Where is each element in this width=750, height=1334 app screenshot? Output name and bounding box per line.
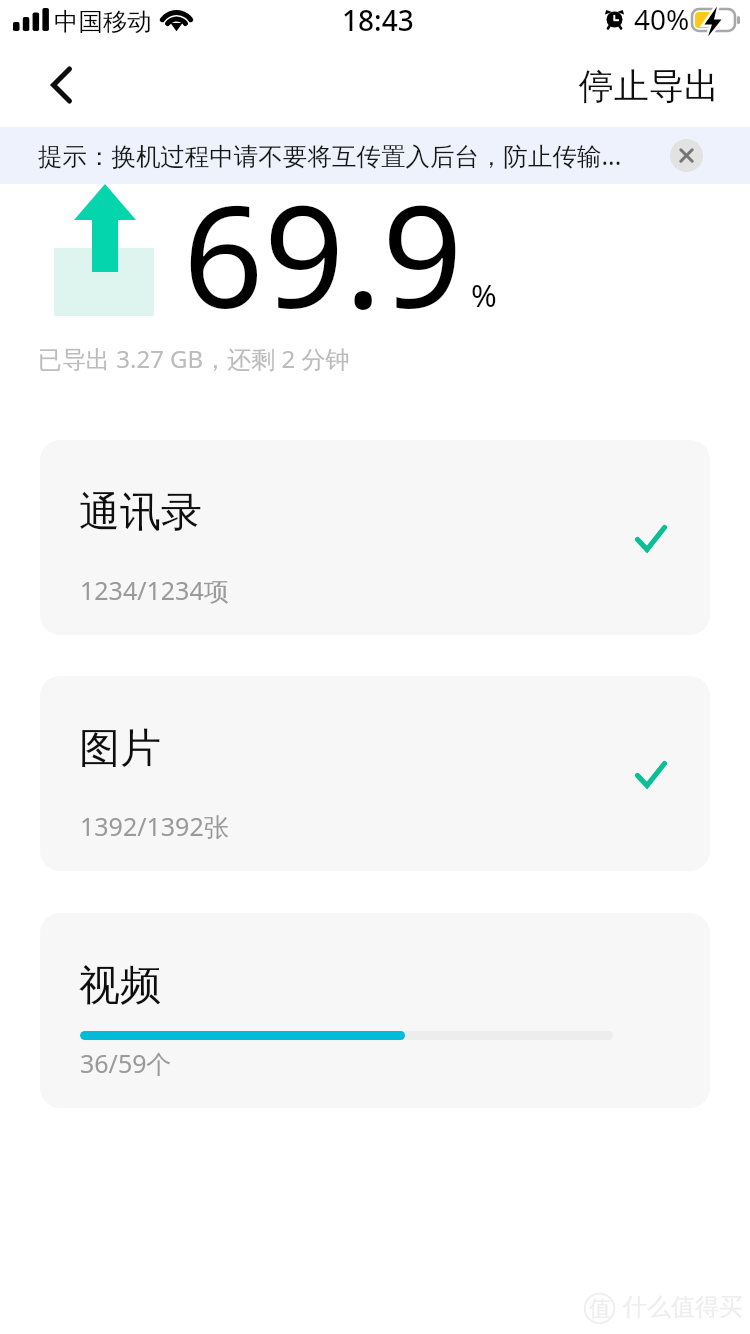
staticText: 值 [589,1295,611,1323]
staticText: 通讯录 [79,487,202,539]
staticText: 1392/1392张 [80,809,229,843]
staticText: 停止导出 [579,64,719,108]
staticText: 36/59个 [80,1046,172,1080]
staticText: 什么值得买 [623,1292,743,1322]
staticText: 提示：换机过程中请不要将互传置入后台，防止传输... [38,139,622,172]
staticText: 1234/1234项 [80,573,229,607]
button[interactable]: 视频 [40,913,710,1108]
staticText: 视频 [79,960,161,1012]
staticText: 18:43 [342,1,414,39]
staticText: 已导出 3.27 GB，还剩 2 分钟 [38,342,350,375]
button[interactable]: Close [670,139,703,172]
button[interactable]: Back [18,44,102,127]
button[interactable]: 通讯录 [40,440,710,635]
staticText: 图片 [79,723,161,775]
staticText: 中国移动 [54,6,152,37]
staticText: % [471,274,497,316]
button[interactable]: 停止导出 [560,44,750,127]
staticText: 69.9 [183,157,463,349]
button[interactable]: 图片 [40,676,710,871]
staticText: 40% [634,0,690,38]
